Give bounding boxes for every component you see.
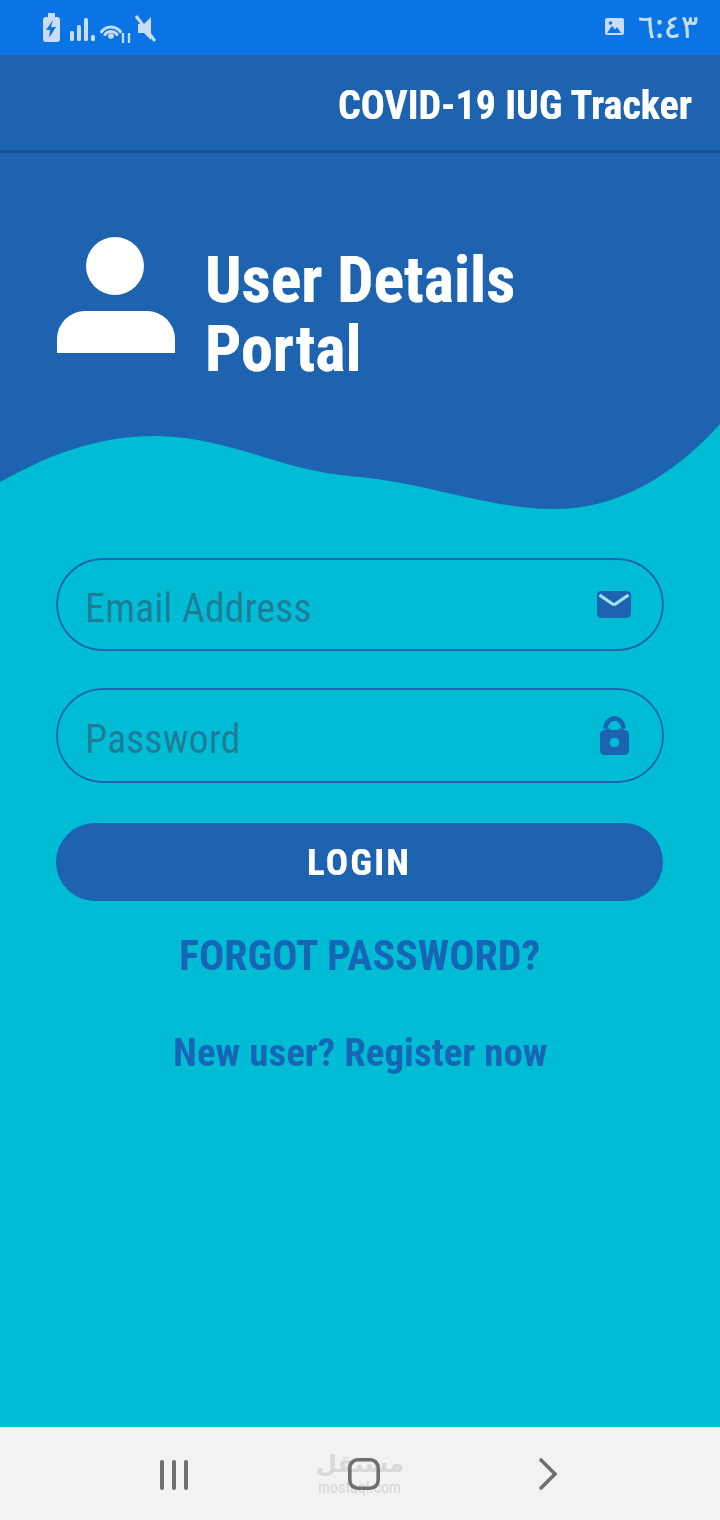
button[interactable]: New user? Register now [173, 1030, 548, 1076]
staticText: ٦:٤٣ [638, 4, 699, 48]
button[interactable] [531, 1458, 563, 1490]
staticText: User Details Portal [205, 243, 516, 386]
staticText: LOGIN [307, 841, 412, 884]
button[interactable]: LOGIN [56, 823, 663, 901]
staticText: COVID-19 IUG Tracker [338, 82, 692, 129]
staticText: مستقل [316, 1450, 404, 1478]
button[interactable]: Email Address [56, 558, 664, 651]
button[interactable] [348, 1458, 374, 1490]
staticText: Password [85, 716, 241, 763]
staticText: mostaql.com [318, 1478, 402, 1497]
staticText: Email Address [85, 585, 312, 632]
button[interactable] [154, 1458, 194, 1490]
button[interactable]: Password [56, 688, 664, 783]
button[interactable]: FORGOT PASSWORD? [179, 931, 541, 980]
